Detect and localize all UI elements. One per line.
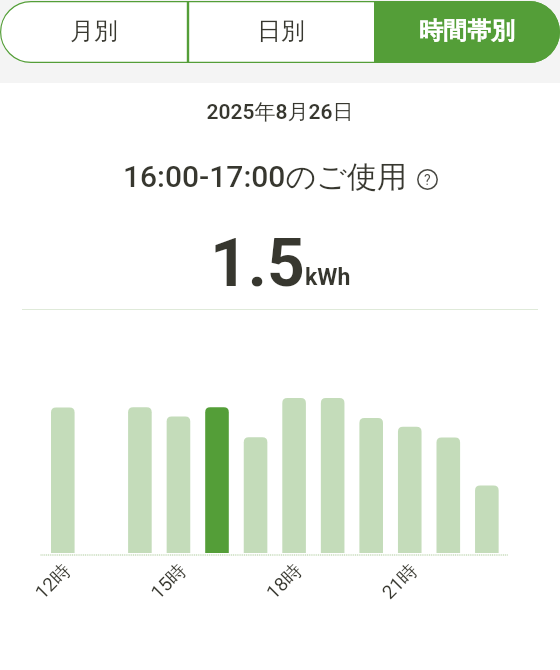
staticText: 1.5	[210, 225, 305, 302]
button[interactable]: 日別	[187, 1, 374, 63]
staticText: 2025年8月26日	[0, 99, 560, 125]
staticText: 時間帯別	[419, 16, 515, 46]
staticText: 日別	[257, 16, 305, 46]
staticText: ?	[424, 172, 431, 188]
staticText: 月別	[70, 16, 118, 46]
button[interactable]: Help	[417, 169, 438, 190]
button[interactable]: 月別	[0, 1, 187, 63]
staticText: 16:00-17:00のご使用	[123, 158, 407, 196]
button[interactable]: 時間帯別	[374, 1, 560, 63]
staticText: kWh	[305, 264, 351, 291]
